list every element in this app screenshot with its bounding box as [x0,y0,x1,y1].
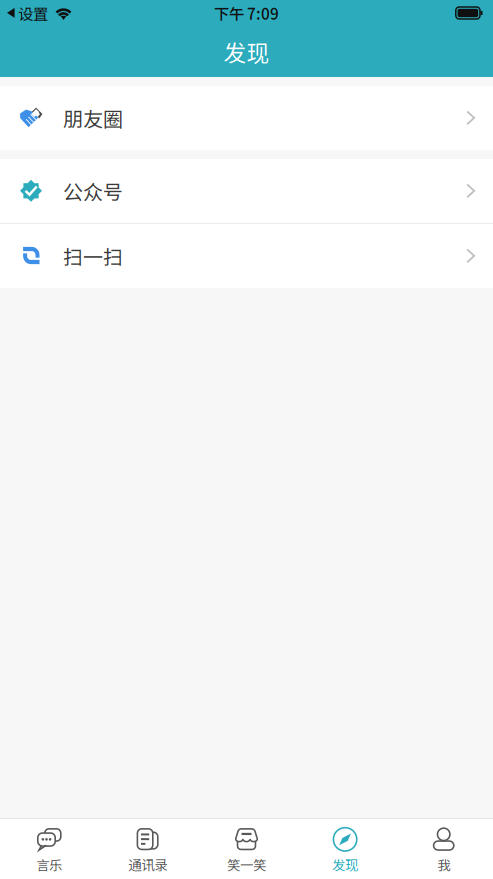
button[interactable]: 公众号 [0,159,493,223]
staticText: 言乐 [36,855,62,874]
staticText: 朋友圈 [63,103,123,132]
button[interactable]: 扫一扫 [0,224,493,288]
staticText: 下午 7:09 [214,2,279,24]
staticText: 扫一扫 [63,241,123,270]
button[interactable]: 通讯录 [99,819,197,879]
staticText: 我 [437,855,450,874]
staticText: 发现 [223,35,269,68]
button[interactable]: 发现 [296,819,394,879]
staticText: 设置 [18,2,48,24]
staticText: 通讯录 [128,855,167,874]
staticText: 公众号 [63,176,123,205]
button[interactable]: 言乐 [0,819,99,879]
button[interactable]: 我 [394,819,493,879]
button[interactable]: 朋友圈 [0,86,493,150]
staticText: 发现 [332,855,358,874]
button[interactable]: 笑一笑 [197,819,296,879]
staticText: 笑一笑 [227,855,266,874]
button[interactable]: 设置 [7,2,48,24]
